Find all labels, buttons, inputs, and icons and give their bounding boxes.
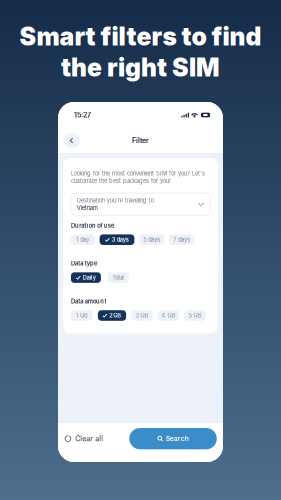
- staticText: the right SIM: [61, 52, 220, 82]
- button[interactable]: Total: [108, 272, 129, 283]
- staticText: Data type: [71, 260, 97, 267]
- staticText: Vietnam: [77, 204, 98, 211]
- staticText: Total: [112, 274, 124, 281]
- staticText: 5 days: [143, 236, 160, 243]
- staticText: 3 days: [112, 236, 129, 243]
- button[interactable]: Destination you're traveling to: [71, 193, 210, 215]
- staticText: customize the best packages for you!: [71, 177, 171, 184]
- button[interactable]: 7 days: [169, 234, 194, 245]
- button[interactable]: Clear all: [64, 432, 103, 446]
- button[interactable]: 5 GB: [184, 310, 206, 321]
- button[interactable]: Daily: [71, 272, 101, 283]
- button[interactable]: 2 GB: [98, 310, 126, 321]
- button[interactable]: 3 days: [100, 234, 134, 245]
- staticText: 15:27: [74, 111, 91, 119]
- staticText: Destination you're traveling to: [77, 197, 154, 204]
- staticText: 7 days: [173, 236, 190, 243]
- button[interactable]: Back: [64, 133, 80, 148]
- staticText: Data amount: [71, 298, 106, 305]
- staticText: 2 GB: [109, 312, 121, 319]
- staticText: 3 GB: [135, 312, 148, 319]
- button[interactable]: 1 day: [71, 234, 95, 245]
- staticText: Filter: [132, 136, 149, 145]
- staticText: Clear all: [75, 434, 103, 443]
- staticText: 1 day: [76, 236, 89, 243]
- staticText: Search: [166, 434, 189, 443]
- button[interactable]: 1 GB: [71, 310, 93, 321]
- staticText: Smart filters to find: [19, 21, 261, 51]
- staticText: 4 GB: [161, 312, 175, 319]
- staticText: Daily: [83, 274, 96, 281]
- button[interactable]: Search: [129, 428, 217, 449]
- button[interactable]: 4 GB: [158, 310, 179, 321]
- staticText: Looking for the most convenient SIM for …: [71, 170, 205, 177]
- staticText: 1 GB: [76, 312, 88, 319]
- staticText: Duration of use: [71, 222, 114, 229]
- button[interactable]: 5 days: [139, 234, 164, 245]
- button[interactable]: 3 GB: [131, 310, 153, 321]
- staticText: 5 GB: [188, 312, 201, 319]
